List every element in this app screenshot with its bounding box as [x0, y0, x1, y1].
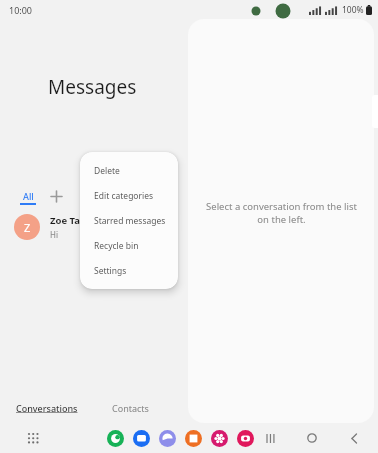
staticText: Messages [48, 74, 137, 100]
staticText: 10:00 [9, 4, 33, 16]
button[interactable]: Conversations [12, 400, 82, 416]
button[interactable]: Phone [107, 430, 124, 447]
staticText: Edit categories [94, 190, 154, 202]
staticText: 100% [342, 4, 364, 16]
button[interactable]: Z [0, 210, 188, 244]
button[interactable]: All apps [23, 428, 43, 448]
button[interactable]: Home [302, 428, 322, 448]
staticText: Starred messages [94, 215, 166, 227]
button[interactable]: All [16, 189, 40, 206]
staticText: Settings [94, 265, 127, 277]
staticText: Hi [50, 229, 58, 240]
staticText: Delete [94, 165, 120, 177]
staticText: Select a conversation from the list on t… [206, 200, 357, 226]
button[interactable]: Recents [260, 428, 280, 448]
button[interactable]: Gallery [211, 430, 228, 447]
button[interactable]: Camera [237, 430, 254, 447]
staticText: Z [24, 220, 31, 235]
button[interactable]: Delete [80, 158, 178, 183]
button[interactable]: Settings [80, 258, 178, 283]
button[interactable]: Add category [46, 186, 66, 206]
button[interactable]: Messages [133, 430, 150, 447]
button[interactable]: Edit categories [80, 183, 178, 208]
button[interactable]: Back [344, 428, 364, 448]
staticText: Conversations [16, 402, 78, 414]
staticText: Contacts [112, 402, 149, 414]
button[interactable]: Starred messages [80, 208, 178, 233]
button[interactable]: Contacts [108, 400, 153, 416]
staticText: Zoe Taylor [50, 214, 99, 227]
button[interactable]: Notes [185, 430, 202, 447]
staticText: Recycle bin [94, 240, 139, 252]
staticText: All [23, 190, 34, 202]
button[interactable]: Recycle bin [80, 233, 178, 258]
button[interactable]: Internet [159, 430, 176, 447]
